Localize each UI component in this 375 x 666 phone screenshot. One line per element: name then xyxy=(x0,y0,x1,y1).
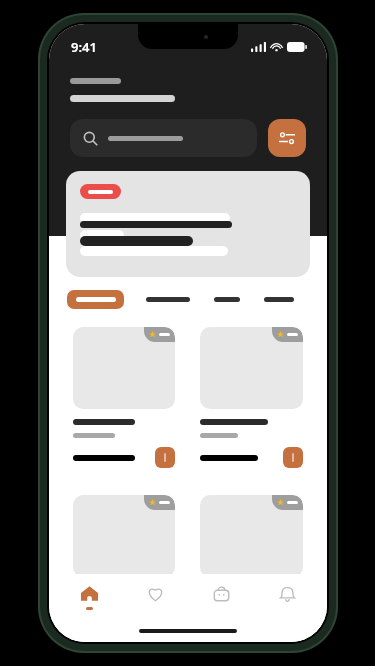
button[interactable]: Add to cart xyxy=(155,447,175,468)
button[interactable]: Filter xyxy=(268,119,306,157)
button[interactable]: Home xyxy=(63,574,115,620)
button[interactable] xyxy=(264,290,294,309)
button[interactable] xyxy=(214,290,240,309)
button[interactable]: Favorites xyxy=(129,574,181,620)
button[interactable]: Add to cart xyxy=(66,320,182,477)
button[interactable]: Add to cart xyxy=(193,488,310,642)
button[interactable] xyxy=(67,290,124,309)
staticText: 9:41 xyxy=(71,38,97,56)
button[interactable]: Add to cart xyxy=(155,615,175,635)
button[interactable] xyxy=(146,290,190,309)
button[interactable]: Cart xyxy=(195,574,247,620)
button[interactable]: Add to cart xyxy=(193,320,310,477)
button[interactable]: Add to cart xyxy=(66,488,182,642)
button[interactable] xyxy=(66,171,310,277)
button[interactable]: Notifications xyxy=(261,574,313,620)
button[interactable] xyxy=(70,119,257,157)
button[interactable]: Add to cart xyxy=(283,447,303,468)
